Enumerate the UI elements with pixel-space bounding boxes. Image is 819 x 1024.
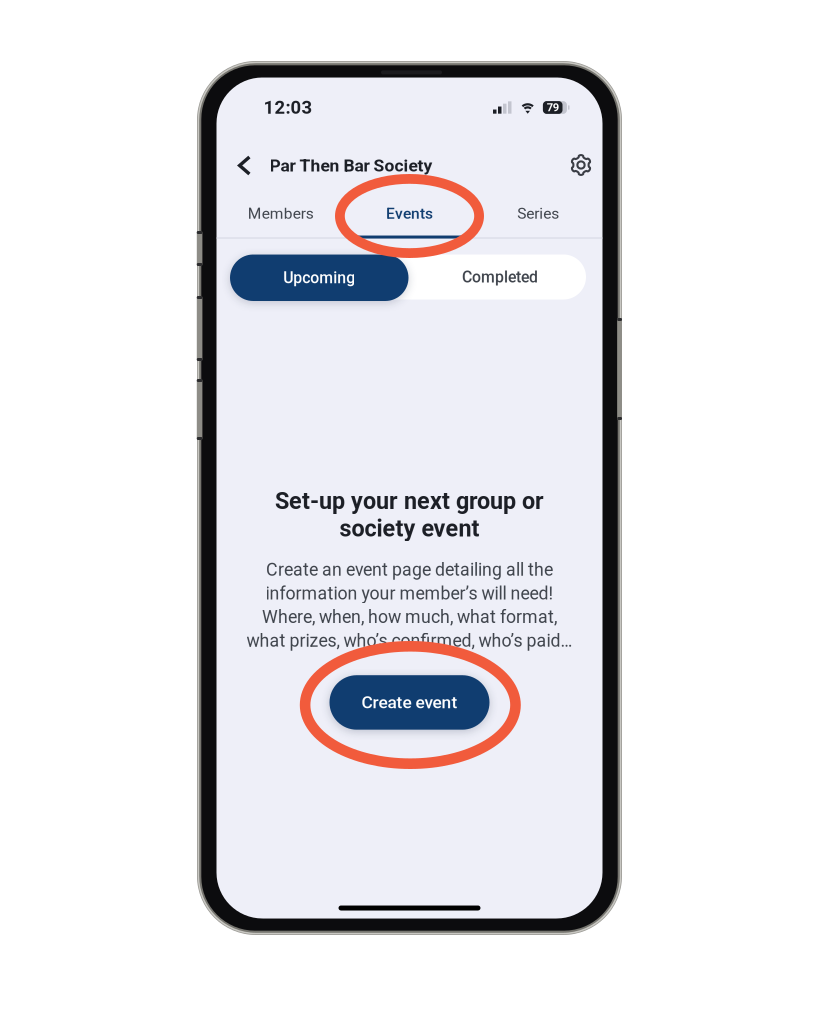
button[interactable]: Upcoming	[230, 254, 408, 301]
staticText: Create event	[361, 692, 457, 713]
button[interactable]: Back	[227, 145, 261, 185]
button[interactable]: Members	[216, 192, 345, 234]
staticText: Completed	[462, 268, 538, 286]
staticText: what prizes, who’s confirmed, who’s paid…	[246, 630, 572, 651]
button[interactable]: Create event	[329, 675, 489, 730]
button[interactable]: Series	[474, 192, 602, 234]
staticText: Par Then Bar Society	[269, 155, 432, 176]
staticText: Create an event page detailing all the	[266, 559, 553, 580]
staticText: 12:03	[263, 97, 312, 118]
staticText: Series	[517, 204, 559, 223]
button[interactable]: Completed	[411, 254, 589, 299]
staticText: information your member’s will need!	[265, 583, 553, 604]
button[interactable]: Events	[345, 192, 474, 234]
staticText: Members	[248, 204, 314, 223]
button[interactable]: Settings	[563, 145, 599, 185]
staticText: Set-up your next group or	[275, 487, 544, 515]
staticText: Where, when, how much, what format,	[262, 607, 557, 627]
staticText: Upcoming	[283, 268, 355, 287]
staticText: society event	[339, 515, 479, 542]
staticText: 79	[547, 101, 559, 114]
staticText: Events	[386, 204, 433, 223]
